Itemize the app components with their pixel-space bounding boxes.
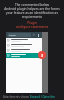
button[interactable] [7,48,41,53]
button[interactable] [7,43,41,48]
staticText: 3 [41,53,44,58]
staticText: requirements [0,15,64,19]
staticText: Search [9,34,16,37]
button[interactable] [7,38,41,43]
staticText: configure statements [0,25,64,29]
staticText: The commented below [4,3,60,7]
button[interactable]: Attachments shown [3,95,30,98]
staticText: Expand / Open the toggles [30,95,61,98]
button[interactable]: Search [32,33,36,37]
button[interactable] [7,53,41,58]
button[interactable]: Expand / Open the toggles [30,95,61,98]
button[interactable]: Search [6,32,42,93]
button[interactable]: Search [8,33,31,37]
staticText: Plugin [0,21,64,25]
staticText: your feature as an identification as [2,11,62,15]
button[interactable]: Notification badge 3 [38,51,46,59]
staticText: Attachments shown [3,95,30,98]
button[interactable]: More options [36,33,40,37]
staticText: Android plugin helpers are the forms [2,7,62,11]
